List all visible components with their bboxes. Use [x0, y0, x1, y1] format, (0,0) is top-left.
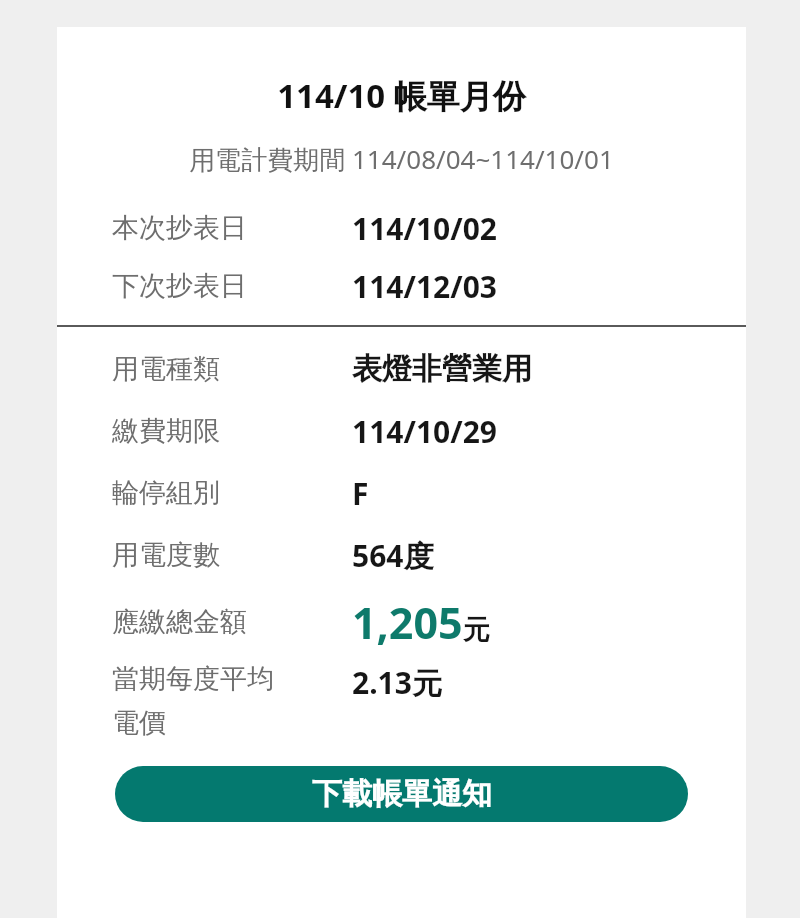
staticText: 表燈非營業用 [352, 350, 532, 388]
staticText: 當期每度平均 電價 [112, 662, 352, 740]
staticText: 本次抄表日 [112, 211, 352, 245]
staticText: 應繳總金額 [112, 605, 352, 639]
staticText: 用電種類 [112, 352, 352, 386]
staticText: 下次抄表日 [112, 269, 352, 303]
staticText: 114/10/29 [352, 411, 498, 452]
button[interactable]: 下載帳單通知 [115, 766, 688, 822]
staticText: 2.13元 [352, 662, 442, 703]
staticText: 下載帳單通知 [312, 775, 492, 813]
staticText: 114/10 帳單月份 [57, 73, 746, 118]
staticText: 用電計費期間 114/08/04~114/10/01 [57, 141, 746, 177]
staticText: F [352, 473, 369, 514]
staticText: 1,205元 [352, 593, 490, 652]
staticText: 114/10/02 [352, 208, 498, 249]
staticText: 564度 [352, 535, 434, 576]
staticText: 114/12/03 [352, 266, 498, 307]
staticText: 輪停組別 [112, 476, 352, 510]
staticText: 用電度數 [112, 538, 352, 572]
staticText: 繳費期限 [112, 414, 352, 448]
